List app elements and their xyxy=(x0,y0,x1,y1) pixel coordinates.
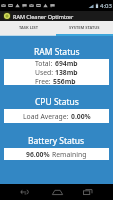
staticText: Remaining xyxy=(52,150,87,159)
staticText: RAM Cleaner Optimizer xyxy=(13,13,74,20)
button[interactable]: SYSTEM STATUS xyxy=(56,21,113,34)
staticText: SYSTEM STATUS xyxy=(69,25,100,30)
staticText: 694mb xyxy=(55,59,78,68)
button[interactable]: Home xyxy=(43,184,71,200)
staticText: Used: xyxy=(35,68,55,77)
staticText: 138mb xyxy=(55,68,78,77)
staticText: Load Average: xyxy=(23,112,71,121)
button[interactable]: Back xyxy=(10,184,38,200)
staticText: Battery Status xyxy=(28,135,85,147)
staticText: Free: xyxy=(35,77,53,85)
staticText: 0.00% xyxy=(71,112,91,121)
staticText: 96.00% xyxy=(26,150,52,159)
staticText: CPU Status xyxy=(35,96,79,108)
staticText: Total: xyxy=(35,59,55,68)
button[interactable]: Recent apps xyxy=(74,184,102,200)
staticText: 556mb xyxy=(53,77,76,85)
staticText: 4:03 xyxy=(100,2,112,10)
button[interactable]: TASK LIST xyxy=(0,21,56,34)
staticText: TASK LIST xyxy=(19,25,38,30)
staticText: RAM Status xyxy=(34,46,80,58)
